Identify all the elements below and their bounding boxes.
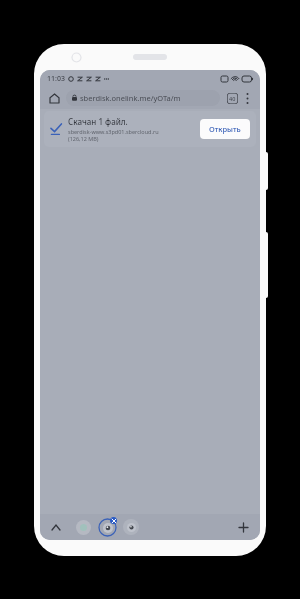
button[interactable]: Tabs: 40 (224, 90, 240, 106)
button[interactable]: Tab (76, 520, 91, 535)
button[interactable]: Current tab (98, 518, 117, 537)
staticText: sberdisk.onelink.me/yOTa/m (80, 93, 181, 103)
button[interactable]: Home (46, 90, 62, 106)
staticText: sberdisk-www.s3pd01.sbercloud.ru (68, 128, 159, 135)
button[interactable]: More options (240, 91, 254, 105)
button[interactable]: Close tab (110, 517, 117, 524)
button[interactable]: sberdisk.onelink.me/yOTa/m (66, 90, 220, 106)
button[interactable]: Expand toolbar (48, 519, 64, 535)
staticText: 40 (229, 95, 236, 102)
staticText: Открыть (209, 124, 241, 134)
button[interactable]: Скачан 1 файл. (44, 111, 256, 147)
button[interactable]: New tab (234, 518, 252, 536)
staticText: (126,12 MB) (68, 135, 99, 142)
button[interactable]: Открыть (200, 119, 250, 139)
staticText: Скачан 1 файл. (68, 116, 128, 127)
button[interactable]: Tab (123, 519, 139, 535)
staticText: 11:03 (47, 74, 65, 84)
